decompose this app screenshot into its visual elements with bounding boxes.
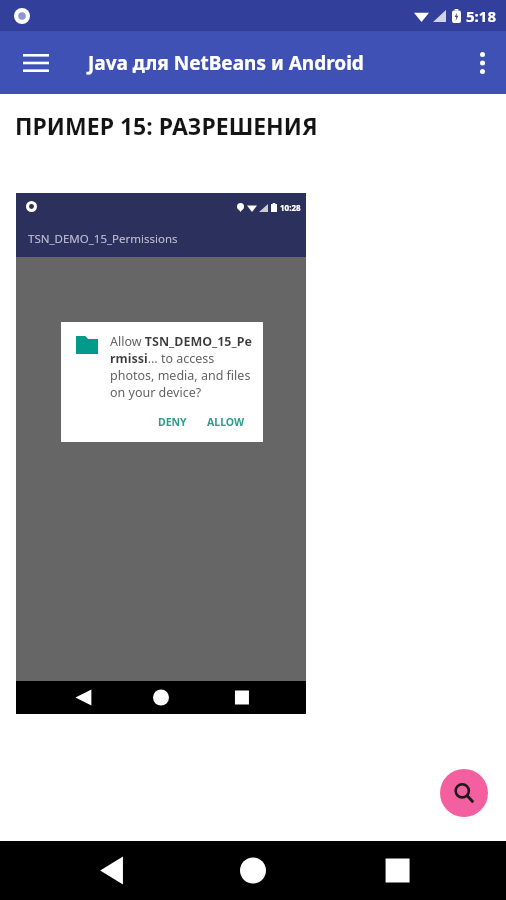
- staticText: TSN_DEMO_15_Permissions: [28, 231, 178, 247]
- staticText: 5:18: [466, 6, 496, 26]
- staticText: ПРИМЕР 15: РАЗРЕШЕНИЯ: [15, 110, 318, 141]
- button[interactable]: More options: [458, 31, 506, 94]
- staticText: Allow TSN_DEMO_15_Permissi… to access ph…: [110, 333, 255, 401]
- button[interactable]: ALLOW: [201, 412, 251, 432]
- staticText: Java для NetBeans и Android: [88, 50, 364, 76]
- staticText: DENY: [158, 415, 187, 429]
- button[interactable]: DENY: [152, 412, 193, 432]
- button[interactable]: Open navigation menu: [8, 31, 64, 94]
- staticText: 10:28: [280, 202, 301, 213]
- button[interactable]: Search: [440, 769, 488, 817]
- staticText: ALLOW: [207, 415, 245, 429]
